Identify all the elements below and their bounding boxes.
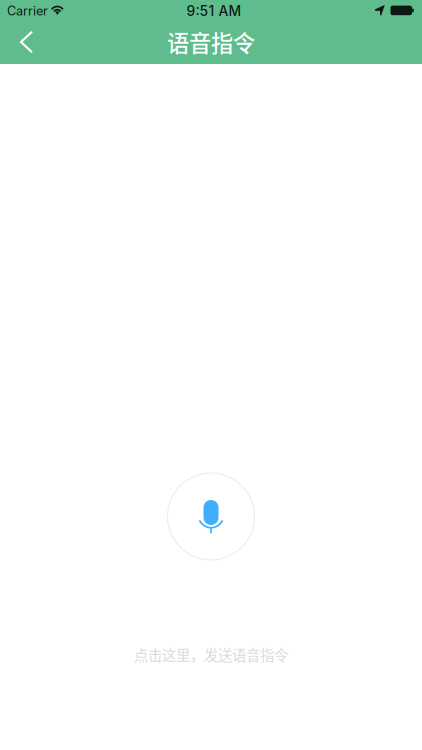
- staticText: Carrier: [7, 3, 48, 19]
- staticText: 点击这里，发送语音指令: [134, 644, 288, 665]
- button[interactable]: Back: [0, 20, 48, 64]
- staticText: 9:51 AM: [186, 3, 241, 19]
- button[interactable]: Tap to record a voice command: [167, 473, 254, 560]
- staticText: 语音指令: [167, 26, 255, 58]
